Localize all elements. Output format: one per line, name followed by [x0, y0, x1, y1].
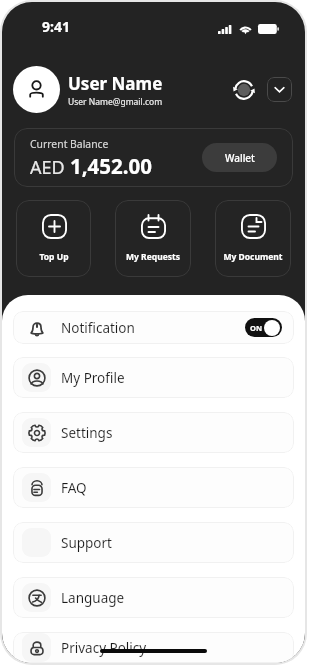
staticText: Language	[61, 589, 125, 607]
button[interactable]: Privacy Policy	[13, 632, 294, 663]
staticText: Support	[61, 534, 112, 552]
button[interactable]: Notification	[13, 311, 294, 344]
button[interactable]: Top Up	[16, 200, 91, 277]
button[interactable]: Current Balance	[14, 128, 293, 187]
button[interactable]: FAQ	[13, 467, 294, 508]
button[interactable]: Wallet	[202, 143, 277, 172]
staticText: User Name@gmail.com	[68, 96, 163, 108]
staticText: Wallet	[225, 151, 255, 165]
button[interactable]: My Document	[215, 200, 291, 277]
staticText: User Name	[68, 72, 163, 95]
staticText: Notification	[61, 319, 135, 337]
button[interactable]: Settings	[13, 412, 294, 453]
staticText: Settings	[61, 424, 113, 442]
staticText: Privacy Policy	[61, 639, 147, 657]
staticText: ON	[250, 323, 263, 333]
staticText: 9:41	[42, 17, 70, 36]
staticText: Top Up	[39, 251, 69, 263]
button[interactable]: My Profile	[13, 357, 294, 398]
staticText: My Profile	[61, 369, 125, 387]
button[interactable]: My Requests	[115, 200, 191, 277]
staticText: 1,452.00	[70, 152, 152, 180]
staticText: Current Balance	[30, 137, 109, 151]
button[interactable]: Language	[13, 577, 294, 618]
button[interactable]: Support	[13, 522, 294, 563]
button[interactable]: Refresh	[232, 78, 256, 102]
staticText: FAQ	[61, 479, 87, 497]
staticText: My Document	[223, 251, 283, 263]
staticText: My Requests	[126, 251, 180, 263]
button[interactable]: Expand	[267, 77, 292, 102]
button[interactable]: ON	[245, 318, 282, 337]
staticText: AED	[30, 155, 70, 180]
